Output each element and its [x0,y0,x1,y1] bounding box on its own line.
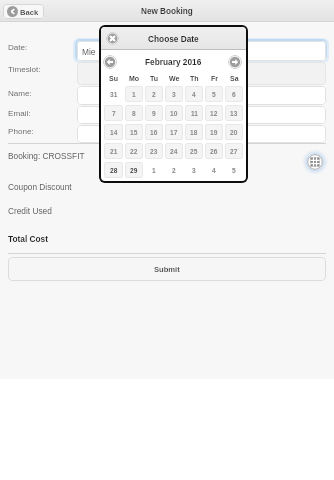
staticText: 6 [232,91,236,98]
staticText: 17 [170,129,178,136]
button[interactable]: 14 [104,124,123,140]
staticText: Fr [211,75,218,83]
button[interactable]: 4 [205,162,223,178]
staticText: 20 [230,129,238,136]
button[interactable]: 26 [205,143,223,159]
staticText: 7 [112,110,116,117]
staticText: 19 [210,129,218,136]
button[interactable]: 1 [145,162,163,178]
staticText: 12 [210,110,218,117]
button[interactable]: 16 [145,124,163,140]
staticText: Back [20,8,39,16]
button[interactable]: 24 [165,143,183,159]
button[interactable]: 23 [145,143,163,159]
button[interactable]: 19 [205,124,223,140]
button[interactable]: 10 [165,105,183,121]
staticText: 1 [152,167,156,174]
staticText: 25 [190,148,198,155]
button[interactable]: 20 [225,124,243,140]
button[interactable]: Open calendar [302,149,328,175]
staticText: Phone: [8,127,34,136]
staticText: Email: [8,109,31,118]
staticText: 15 [130,129,138,136]
button[interactable]: 21 [104,143,123,159]
staticText: 23 [150,148,158,155]
staticText: 3 [172,91,176,98]
staticText: Submit [154,265,180,273]
button[interactable]: 18 [185,124,203,140]
staticText: Su [109,75,118,83]
button[interactable]: 9 [145,105,163,121]
staticText: Timeslot: [8,65,41,74]
staticText: 8 [132,110,136,117]
button[interactable]: 1 [125,86,143,102]
staticText: 3 [192,167,196,174]
staticText: 27 [230,148,238,155]
staticText: New Booking [141,7,193,16]
staticText: 16 [150,129,158,136]
staticText: 11 [191,110,198,117]
staticText: February 2016 [145,57,202,66]
button[interactable] [77,86,326,105]
staticText: Mo [129,75,140,83]
button[interactable]: Next month [228,55,242,69]
staticText: 5 [212,91,216,98]
button[interactable]: Previous month [103,55,117,69]
staticText: 29 [130,167,138,174]
button[interactable]: Back [3,4,44,19]
button[interactable]: 5 [205,86,223,102]
staticText: 14 [110,129,118,136]
staticText: 22 [130,148,138,155]
staticText: Booking: CROSSFIT [8,151,85,160]
button[interactable]: Submit [8,257,326,281]
staticText: Credit Used [8,206,52,215]
staticText: 13 [230,110,238,117]
button[interactable]: 4 [185,86,203,102]
button[interactable]: 7 [104,105,123,121]
button[interactable]: 25 [185,143,203,159]
button[interactable]: 2 [145,86,163,102]
staticText: 18 [190,129,198,136]
button[interactable] [77,62,326,85]
staticText: 24 [170,148,178,155]
button[interactable]: 15 [125,124,143,140]
button[interactable]: 5 [225,162,243,178]
staticText: 1 [132,91,136,98]
button[interactable] [77,106,326,124]
button[interactable]: 27 [225,143,243,159]
staticText: 4 [192,91,196,98]
button[interactable]: 6 [225,86,243,102]
button[interactable]: Close [106,32,119,45]
staticText: 10 [170,110,178,117]
staticText: 5 [232,167,236,174]
staticText: We [169,75,180,83]
staticText: 4 [212,167,216,174]
staticText: 28 [110,167,118,174]
staticText: 31 [110,91,118,98]
staticText: Coupon Discount [8,182,72,191]
staticText: Choose Date [148,34,199,43]
button[interactable]: 29 [125,162,143,178]
button[interactable]: 3 [185,162,203,178]
button[interactable]: 28 [104,162,123,178]
button[interactable]: 11 [185,105,203,121]
button[interactable]: 13 [225,105,243,121]
staticText: Mie [82,47,96,56]
button[interactable]: 8 [125,105,143,121]
staticText: 2 [152,91,156,98]
staticText: Name: [8,89,32,98]
button[interactable]: 12 [205,105,223,121]
button[interactable]: 22 [125,143,143,159]
staticText: Tu [150,75,159,83]
button[interactable]: 3 [165,86,183,102]
staticText: Sa [230,75,239,83]
staticText: 2 [172,167,176,174]
button[interactable]: Mie [77,41,326,61]
staticText: Total Cost [8,234,48,243]
button[interactable] [77,125,326,143]
staticText: 9 [152,110,156,117]
button[interactable]: 17 [165,124,183,140]
button[interactable]: 31 [104,86,123,102]
staticText: Date: [8,43,28,52]
button[interactable]: 2 [165,162,183,178]
